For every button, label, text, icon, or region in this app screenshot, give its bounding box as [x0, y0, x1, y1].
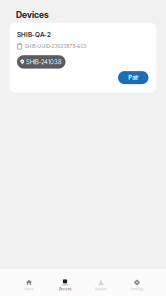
button[interactable]: Sample	[83, 268, 119, 296]
staticText: Devices	[59, 287, 71, 291]
button[interactable]: Pair	[118, 71, 148, 84]
staticText: Devices	[16, 9, 49, 20]
staticText: Sample	[95, 287, 107, 291]
button[interactable]: Settings	[119, 268, 155, 296]
staticText: SHIB-QA-2	[17, 31, 51, 38]
staticText: Settings	[131, 287, 143, 291]
button[interactable]: Home	[11, 268, 47, 296]
staticText: SHIB-241038	[26, 58, 61, 66]
button[interactable]: Devices	[47, 268, 83, 296]
staticText: SHIB-UUID-23023878-E03	[24, 43, 86, 49]
staticText: Pair	[128, 74, 138, 81]
staticText: Home	[24, 287, 33, 291]
